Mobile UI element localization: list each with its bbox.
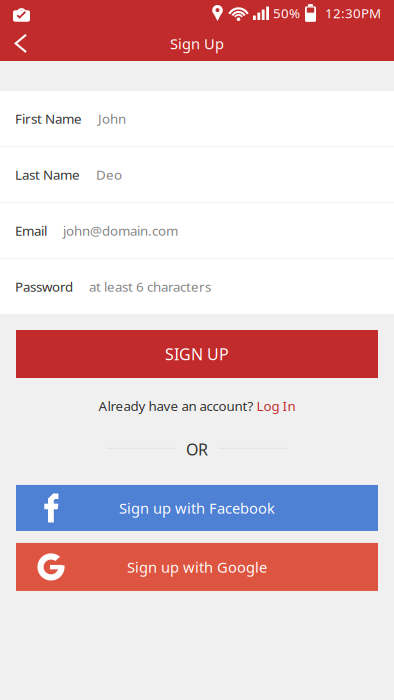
staticText: John <box>98 110 126 127</box>
staticText: SIGN UP <box>165 343 229 365</box>
button[interactable]: Sign up with Google <box>16 543 378 591</box>
staticText: Last Name <box>15 166 80 183</box>
button[interactable]: SIGN UP <box>16 330 378 378</box>
staticText: Log In <box>256 397 295 415</box>
button[interactable]: Back <box>0 26 40 61</box>
staticText: Sign up with Google <box>127 557 267 577</box>
staticText: Already have an account? <box>98 397 256 415</box>
button[interactable]: First Name <box>0 91 394 146</box>
staticText: john@domain.com <box>63 222 178 239</box>
staticText: First Name <box>15 110 82 127</box>
staticText: at least 6 characters <box>89 278 211 295</box>
button[interactable]: Last Name <box>0 147 394 202</box>
staticText: 12:30PM <box>325 4 381 22</box>
staticText: Email <box>15 222 47 239</box>
staticText: Sign up with Facebook <box>119 498 275 518</box>
staticText: Sign Up <box>170 34 224 53</box>
staticText: Deo <box>96 166 122 183</box>
staticText: OR <box>186 439 208 460</box>
button[interactable]: Sign up with Facebook <box>16 485 378 531</box>
button[interactable]: Email <box>0 203 394 258</box>
staticText: 50% <box>273 4 300 22</box>
button[interactable]: Password <box>0 259 394 314</box>
button[interactable]: Log In <box>256 397 295 415</box>
staticText: Password <box>15 278 73 295</box>
